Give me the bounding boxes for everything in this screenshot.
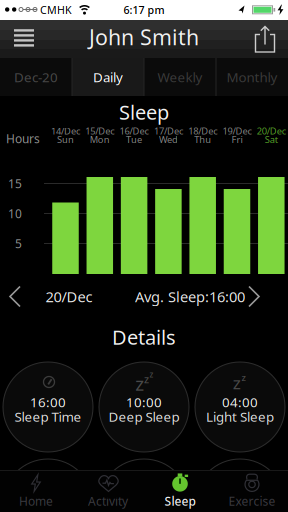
- button[interactable]: Share: [248, 21, 282, 57]
- staticText: Monthly: [226, 68, 277, 86]
- staticText: Activity: [88, 493, 128, 509]
- staticText: 18/Dec: [188, 125, 217, 137]
- staticText: Z: [233, 375, 241, 393]
- staticText: Exercise: [228, 493, 275, 509]
- staticText: z: [241, 371, 245, 384]
- staticText: 17/Dec: [154, 125, 183, 137]
- staticText: 15: [8, 175, 22, 191]
- button[interactable]: Activity: [72, 470, 144, 512]
- staticText: Tue: [126, 133, 142, 146]
- button[interactable]: Z: [99, 362, 189, 452]
- staticText: 04:00: [222, 393, 258, 411]
- staticText: Weekly: [157, 68, 202, 86]
- button[interactable]: Next day: [238, 282, 268, 311]
- staticText: z: [144, 372, 149, 386]
- staticText: Hours: [6, 130, 40, 146]
- staticText: Daily: [93, 68, 123, 86]
- staticText: 19/Dec: [222, 125, 251, 137]
- staticText: 20/Dec: [257, 125, 286, 137]
- staticText: 16/Dec: [120, 125, 149, 137]
- staticText: Deep Sleep: [108, 408, 179, 425]
- staticText: 20/Dec: [45, 287, 92, 306]
- button[interactable]: Exercise: [216, 470, 288, 512]
- button[interactable]: 16:00: [3, 362, 93, 452]
- button[interactable]: Monthly: [216, 58, 288, 96]
- button[interactable]: Sleep: [144, 470, 216, 512]
- staticText: Sat: [265, 133, 278, 146]
- staticText: Wed: [159, 133, 178, 146]
- staticText: Home: [19, 493, 53, 509]
- staticText: Sleep Time: [14, 408, 81, 425]
- staticText: Z: [135, 375, 143, 395]
- staticText: Details: [112, 324, 176, 350]
- staticText: Fri: [231, 133, 242, 146]
- button[interactable]: Previous day: [1, 282, 31, 311]
- staticText: CMHK: [40, 3, 72, 17]
- staticText: John Smith: [89, 23, 199, 51]
- button[interactable]: Dec-20: [0, 58, 72, 96]
- button[interactable]: Menu: [6, 24, 46, 52]
- button[interactable]: Weekly: [144, 58, 216, 96]
- staticText: Dec-20: [14, 68, 58, 86]
- staticText: Light Sleep: [206, 408, 274, 425]
- staticText: 14/Dec: [51, 125, 80, 137]
- button[interactable]: Home: [0, 470, 72, 512]
- staticText: 15/Dec: [85, 125, 114, 137]
- staticText: Avg. Sleep:16:00: [135, 287, 245, 306]
- staticText: Sleep: [119, 99, 169, 125]
- staticText: 5: [15, 235, 22, 251]
- staticText: Sun: [57, 133, 74, 146]
- button[interactable]: Daily: [72, 58, 144, 96]
- staticText: Thu: [194, 133, 211, 146]
- staticText: 10: [8, 205, 22, 221]
- staticText: Sleep: [164, 493, 195, 509]
- staticText: 6:17 pm: [123, 3, 164, 17]
- staticText: 16:00: [30, 393, 66, 411]
- staticText: 10:00: [126, 393, 162, 411]
- staticText: z: [149, 369, 153, 380]
- button[interactable]: Z: [195, 362, 285, 452]
- staticText: Mon: [90, 133, 110, 146]
